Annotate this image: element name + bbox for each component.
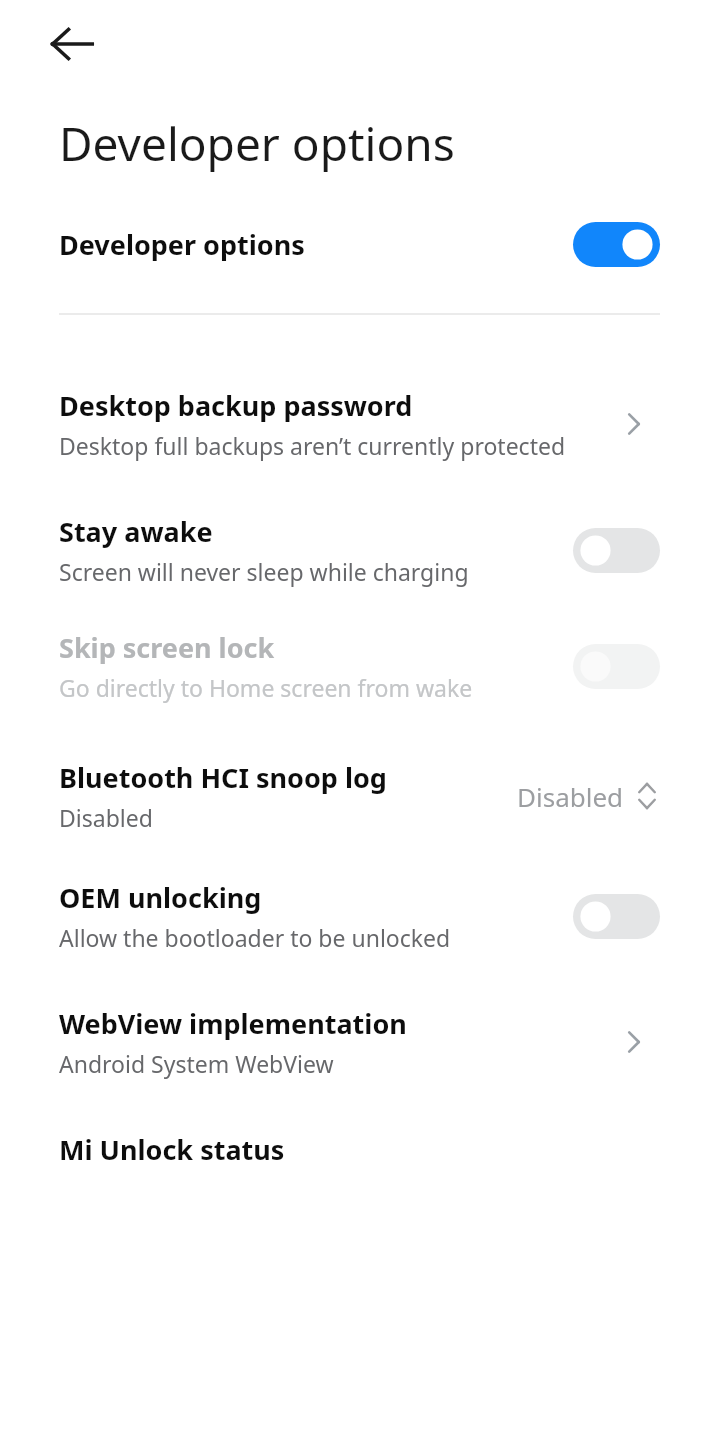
button[interactable]: Skip screen lock <box>0 629 719 703</box>
staticText: Developer options <box>59 226 573 263</box>
staticText: Go directly to Home screen from wake <box>59 672 473 703</box>
button[interactable]: WebView implementation <box>0 1005 719 1079</box>
button[interactable]: Off <box>573 644 660 689</box>
button[interactable]: Developer options <box>0 211 719 277</box>
staticText: Allow the bootloader to be unlocked <box>59 922 451 953</box>
staticText: Desktop full backups aren’t currently pr… <box>59 430 566 461</box>
staticText: Stay awake <box>59 513 213 550</box>
staticText: WebView implementation <box>59 1005 407 1042</box>
button[interactable]: Open <box>608 1016 660 1068</box>
button[interactable]: Back <box>42 14 102 74</box>
button[interactable]: Mi Unlock status <box>0 1131 719 1168</box>
button[interactable]: On <box>573 222 660 267</box>
staticText: Disabled <box>517 779 624 814</box>
button[interactable]: Bluetooth HCI snoop log <box>0 759 719 833</box>
staticText: Skip screen lock <box>59 629 275 666</box>
button[interactable]: Open <box>608 398 660 450</box>
button[interactable]: Desktop backup password <box>0 387 719 461</box>
staticText: Desktop backup password <box>59 387 413 424</box>
staticText: Developer options <box>59 112 455 175</box>
other: Change value <box>634 777 660 815</box>
staticText: Android System WebView <box>59 1048 334 1079</box>
staticText: Mi Unlock status <box>59 1131 285 1168</box>
button[interactable]: Off <box>573 894 660 939</box>
button[interactable]: Disabled <box>517 771 660 821</box>
button[interactable]: Off <box>573 528 660 573</box>
staticText: OEM unlocking <box>59 879 262 916</box>
staticText: Screen will never sleep while charging <box>59 556 469 587</box>
button[interactable]: OEM unlocking <box>0 879 719 953</box>
staticText: Disabled <box>59 802 153 833</box>
button[interactable]: Stay awake <box>0 513 719 587</box>
staticText: Bluetooth HCI snoop log <box>59 759 387 796</box>
